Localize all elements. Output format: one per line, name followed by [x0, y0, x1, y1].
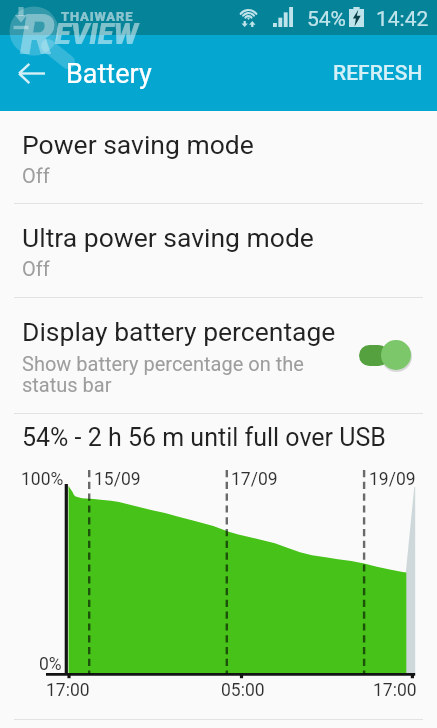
staticText: 17:00 — [373, 680, 417, 701]
staticText: 100% — [21, 469, 64, 490]
staticText: 14:42 — [376, 7, 429, 32]
staticText: 0% — [39, 654, 62, 675]
button[interactable]: Display battery percentage toggle — [350, 326, 420, 378]
button[interactable]: Ultra power saving mode — [0, 204, 437, 298]
staticText: EVIEW — [55, 17, 139, 51]
button[interactable]: REFRESH — [318, 35, 437, 111]
staticText: Battery — [66, 58, 152, 90]
button[interactable]: Navigate up — [9, 51, 53, 95]
staticText: R — [20, 3, 55, 67]
staticText: 17/09 — [231, 469, 278, 490]
staticText: Power saving mode — [22, 129, 254, 160]
button[interactable]: Power saving mode — [0, 111, 437, 204]
staticText: 15/09 — [94, 469, 141, 490]
staticText: 54% — [307, 7, 346, 32]
staticText: Display battery percentage — [22, 316, 336, 347]
staticText: Off — [22, 257, 50, 280]
staticText: 54% - 2 h 56 m until full over USB — [22, 423, 386, 452]
staticText: 19/09 — [369, 469, 416, 490]
staticText: 05:00 — [221, 680, 265, 701]
staticText: 17:00 — [46, 680, 90, 701]
staticText: Ultra power saving mode — [22, 222, 314, 253]
staticText: Show battery percentage on the status ba… — [22, 352, 304, 397]
staticText: REFRESH — [333, 61, 423, 86]
button[interactable]: Display battery percentage — [0, 298, 437, 414]
staticText: Off — [22, 164, 50, 187]
staticText: THAIWARE — [61, 9, 134, 24]
